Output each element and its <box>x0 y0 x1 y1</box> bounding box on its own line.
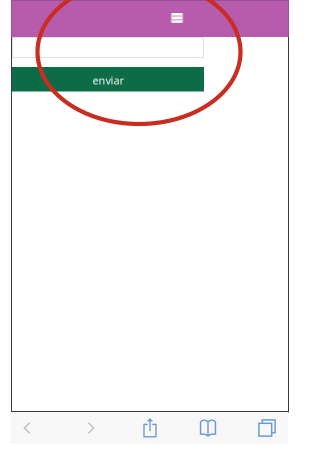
button[interactable]: enviar <box>12 67 204 91</box>
staticText: enviar <box>92 73 123 87</box>
button[interactable]: Menu <box>160 3 194 32</box>
button[interactable]: Share <box>134 412 166 444</box>
button[interactable]: Tabs <box>251 412 283 444</box>
button[interactable]: Forward <box>75 412 107 444</box>
button[interactable]: Back <box>11 412 43 444</box>
button[interactable]: Bookmarks <box>192 412 224 444</box>
